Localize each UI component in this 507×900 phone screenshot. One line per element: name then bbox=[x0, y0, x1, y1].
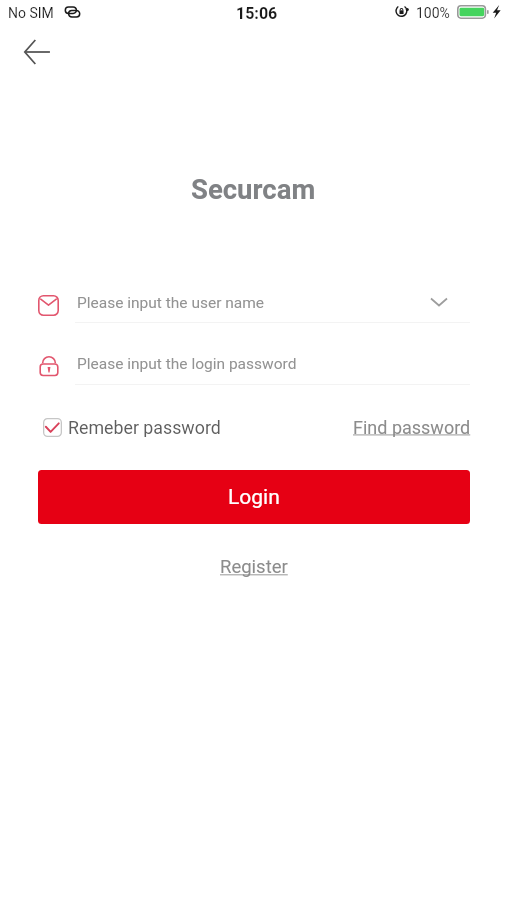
staticText: Please input the user name bbox=[77, 294, 265, 312]
button[interactable]: Remeber password bbox=[43, 417, 221, 437]
button[interactable]: Show saved accounts bbox=[426, 289, 452, 315]
button[interactable]: Find password bbox=[353, 417, 471, 437]
staticText: Login bbox=[228, 485, 280, 510]
button[interactable]: Login bbox=[38, 470, 470, 524]
staticText: Remeber password bbox=[68, 417, 221, 437]
staticText: Securcam bbox=[191, 173, 316, 205]
staticText: 15:06 bbox=[236, 4, 278, 23]
button[interactable]: Back bbox=[14, 29, 60, 75]
staticText: No SIM bbox=[8, 5, 54, 21]
button[interactable]: Register bbox=[220, 556, 288, 578]
staticText: 100% bbox=[416, 5, 450, 21]
staticText: Find password bbox=[353, 417, 471, 437]
staticText: Please input the login password bbox=[77, 355, 297, 373]
button[interactable]: Please input the user name bbox=[38, 290, 418, 322]
button[interactable]: Please input the login password bbox=[38, 351, 470, 383]
